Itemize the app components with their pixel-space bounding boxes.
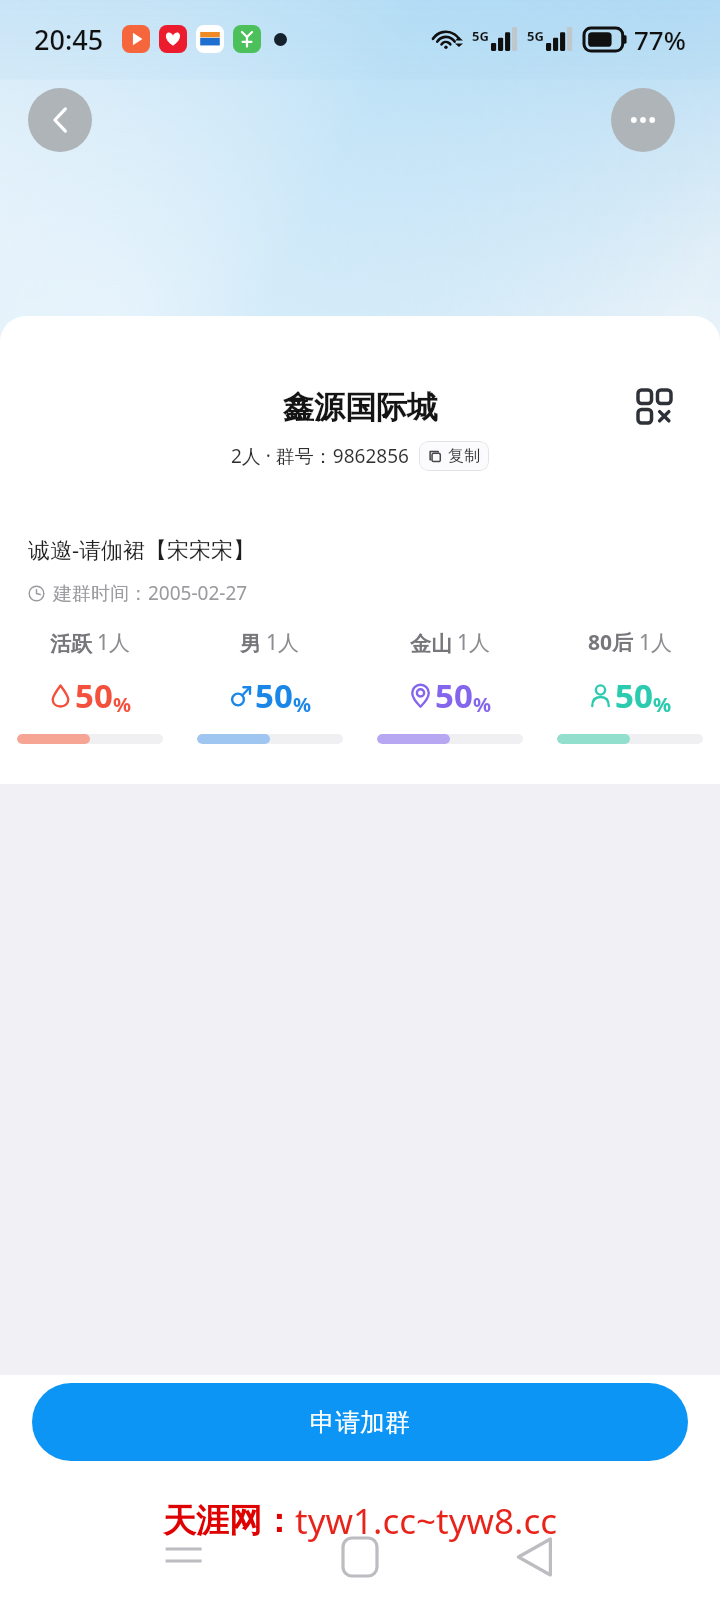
- staticText: %: [473, 691, 492, 718]
- button[interactable]: 复制: [419, 441, 489, 471]
- staticText: 天涯网：: [163, 1500, 295, 1542]
- staticText: 鑫源国际城: [283, 388, 438, 427]
- staticText: 1人: [97, 628, 131, 657]
- button[interactable]: 申请加群: [32, 1383, 688, 1461]
- staticText: 80后: [588, 628, 634, 657]
- staticText: 50: [75, 673, 113, 718]
- staticText: 申请加群: [310, 1407, 410, 1438]
- button[interactable]: Back: [28, 88, 92, 152]
- staticText: %: [653, 691, 672, 718]
- staticText: 金山: [410, 631, 452, 657]
- staticText: tyw1.cc~tyw8.cc: [295, 1497, 558, 1545]
- staticText: 1人: [457, 628, 491, 657]
- staticText: 男: [240, 631, 261, 657]
- staticText: 1人: [639, 628, 673, 657]
- staticText: %: [113, 691, 132, 718]
- staticText: 2人 · 群号：9862856: [231, 443, 409, 469]
- staticText: %: [293, 691, 312, 718]
- staticText: 复制: [448, 446, 480, 466]
- button[interactable]: More options: [611, 88, 675, 152]
- staticText: 50: [255, 673, 293, 718]
- button[interactable]: 金山: [360, 628, 540, 744]
- button[interactable]: 80后: [540, 628, 720, 744]
- staticText: 建群时间：2005-02-27: [53, 580, 248, 606]
- staticText: 20:45: [34, 21, 104, 58]
- button[interactable]: Group QR code: [624, 376, 684, 436]
- staticText: 5G: [527, 27, 544, 45]
- staticText: 77%: [634, 22, 686, 57]
- staticText: 50: [435, 673, 473, 718]
- staticText: 活跃: [50, 631, 92, 657]
- staticText: 1人: [266, 628, 300, 657]
- staticText: 5G: [472, 27, 489, 45]
- button[interactable]: 活跃: [0, 628, 180, 744]
- staticText: 诚邀-请伽裙【宋宋宋】: [28, 534, 256, 564]
- button[interactable]: 男: [180, 628, 360, 744]
- staticText: 50: [615, 673, 653, 718]
